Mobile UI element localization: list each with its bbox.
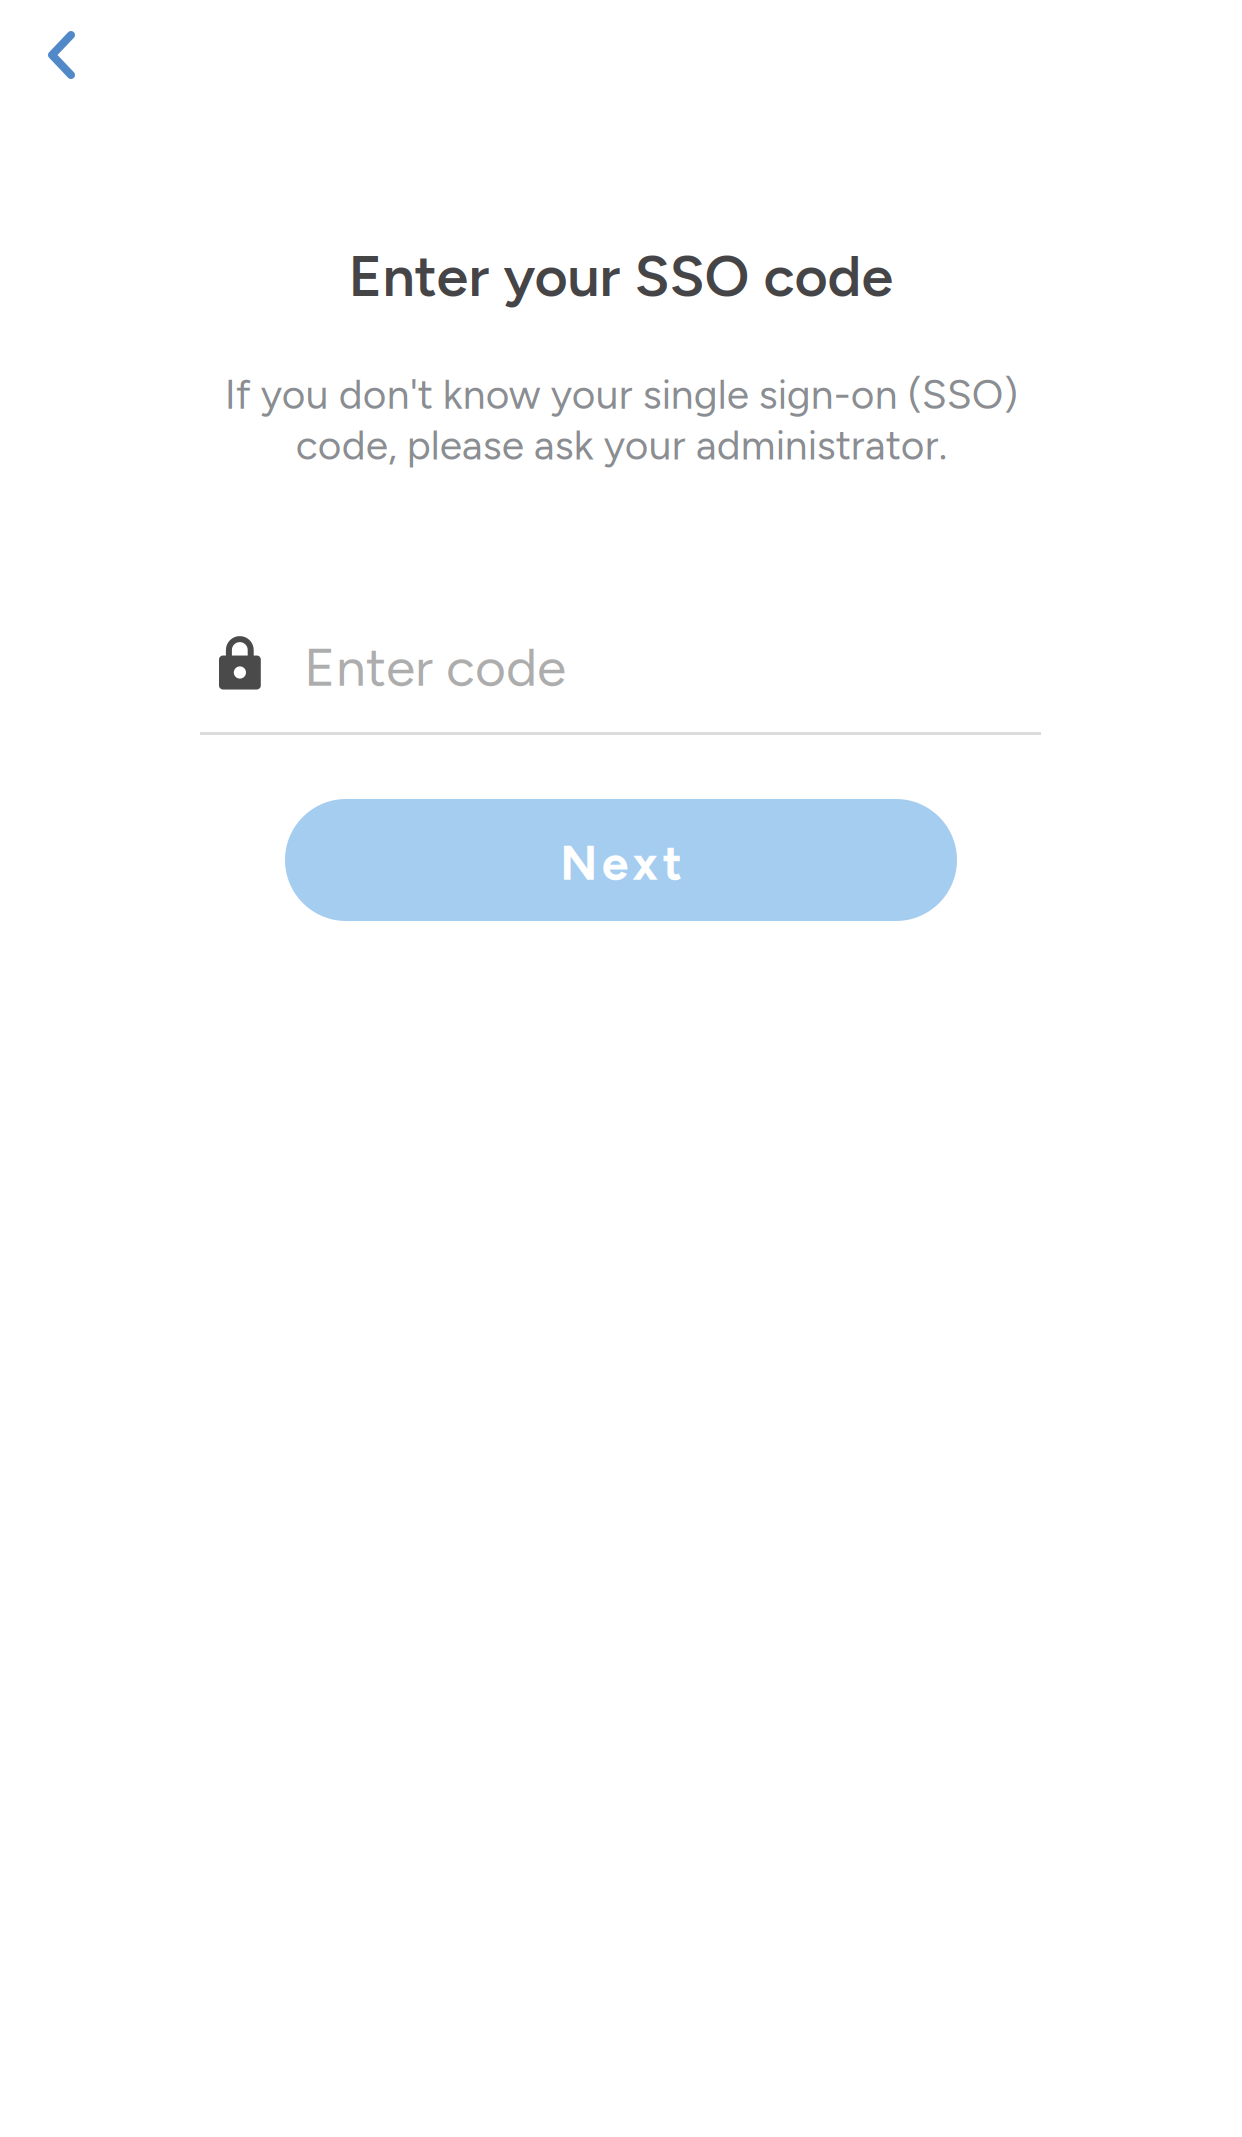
button[interactable]: Back <box>18 1 105 109</box>
staticText: Next <box>560 834 682 892</box>
staticText: Enter code <box>304 635 566 699</box>
button[interactable]: Enter code <box>200 600 1041 735</box>
button[interactable]: Next <box>285 799 957 921</box>
staticText: Enter your SSO code <box>348 242 893 310</box>
staticText: If you don't know your single sign-on (S… <box>224 370 1017 470</box>
